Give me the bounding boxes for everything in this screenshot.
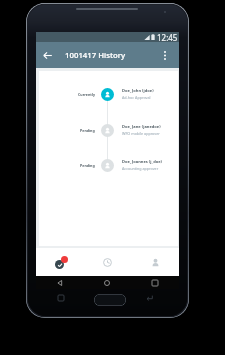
- button[interactable]: Back: [36, 44, 58, 66]
- staticText: Accounting approver: [122, 166, 159, 171]
- button[interactable]: Pending: [39, 121, 178, 139]
- button[interactable]: Approvals: [36, 248, 83, 276]
- button[interactable]: Back: [36, 276, 83, 289]
- button[interactable]: Pending: [39, 156, 178, 174]
- button[interactable]: More options: [154, 44, 176, 66]
- staticText: Pending: [80, 128, 95, 133]
- button[interactable]: History: [83, 248, 131, 276]
- button[interactable]: Home: [83, 276, 131, 289]
- button[interactable]: Currently: [39, 85, 178, 103]
- button[interactable]: Account: [131, 248, 179, 276]
- staticText: Doe, Joannes (j_doe): [122, 159, 162, 164]
- staticText: Pending: [80, 163, 95, 168]
- staticText: Doe, John (jdoe): [122, 88, 154, 93]
- button[interactable]: Recents: [131, 276, 179, 289]
- staticText: 1001417 History: [65, 50, 126, 61]
- staticText: Ad-hoc Approval: [122, 95, 151, 100]
- staticText: Currently: [78, 92, 95, 97]
- staticText: Doe, Jane (janedoe): [122, 124, 161, 129]
- staticText: WFO mobile approver: [122, 131, 160, 136]
- staticText: 12:45: [157, 32, 178, 42]
